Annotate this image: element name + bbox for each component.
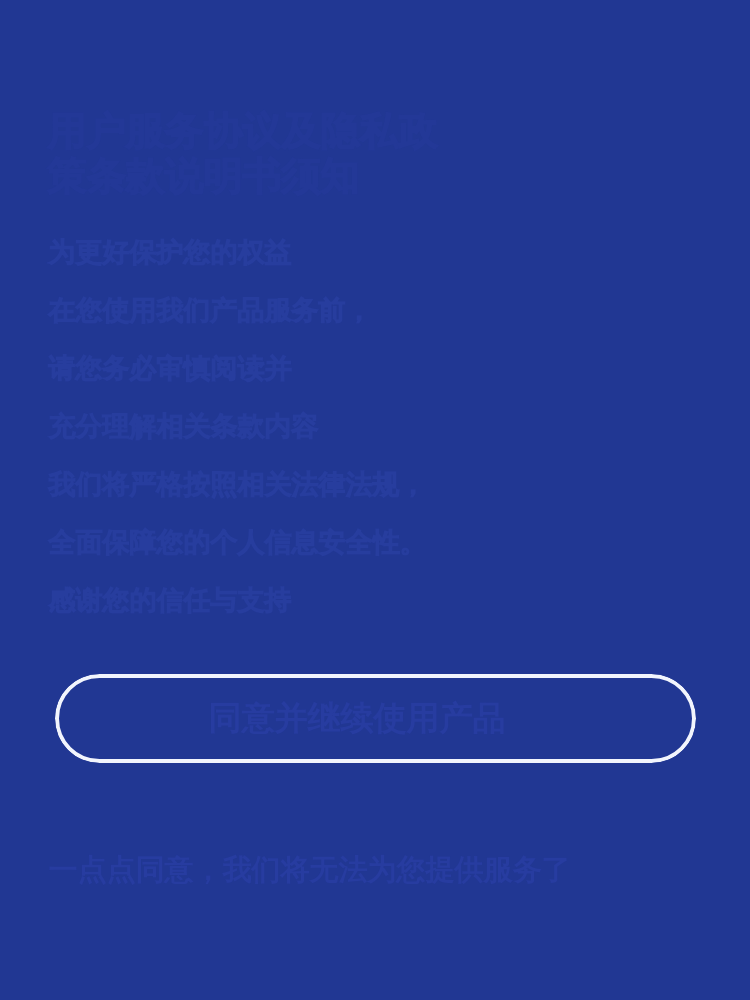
staticText: 一点点同意，我们将无法为您提供服务了 <box>48 852 570 889</box>
staticText: 我们将严格按照相关法律法规， <box>48 468 426 502</box>
staticText: 全面保障您的个人信息安全性。 <box>48 526 426 560</box>
button[interactable]: 一点点同意，我们将无法为您提供服务了 <box>48 852 570 889</box>
staticText: 同意并继续使用产品 <box>208 698 505 740</box>
staticText: 充分理解相关条款内容 <box>48 410 318 444</box>
staticText: 为更好保护您的权益 <box>48 236 291 270</box>
staticText: 感谢您的信任与支持 <box>48 584 291 618</box>
staticText: 请您务必审慎阅读并 <box>48 352 291 386</box>
button[interactable]: Agree and continue <box>55 674 696 763</box>
staticText: 在您使用我们产品服务前， <box>48 294 372 328</box>
